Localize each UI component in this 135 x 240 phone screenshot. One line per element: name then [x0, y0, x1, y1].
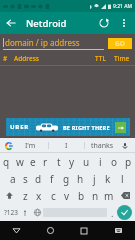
staticText: p — [125, 155, 132, 169]
staticText: c — [51, 189, 56, 203]
button[interactable]: m — [102, 187, 116, 204]
button[interactable]: l — [115, 170, 129, 187]
button[interactable]: UBER — [6, 118, 130, 136]
staticText: f — [50, 172, 54, 186]
button[interactable]: Enter — [117, 205, 132, 220]
button[interactable]: u — [79, 153, 93, 170]
button[interactable]: v — [60, 187, 74, 204]
staticText: l — [121, 172, 124, 186]
button[interactable]: q — [0, 153, 13, 170]
staticText: x — [36, 189, 42, 203]
button[interactable]: o — [107, 153, 121, 170]
button[interactable]: d — [32, 170, 45, 187]
staticText: i — [99, 155, 102, 169]
button[interactable]: Back — [0, 12, 22, 34]
staticText: q — [3, 155, 10, 169]
staticText: Time — [114, 54, 130, 63]
button[interactable]: b — [74, 187, 88, 204]
staticText: I — [65, 141, 68, 151]
staticText: TTL — [95, 54, 106, 63]
button[interactable]: h — [73, 170, 87, 187]
staticText: UBER — [10, 123, 30, 131]
staticText: Netdroid — [26, 17, 67, 30]
button[interactable]: Emoji — [19, 204, 31, 221]
button[interactable]: I — [49, 138, 84, 153]
button[interactable]: e — [26, 153, 39, 170]
staticText: v — [64, 189, 70, 203]
staticText: ?123 — [4, 208, 18, 217]
staticText: s — [23, 172, 28, 186]
button[interactable]: ?123 — [3, 204, 19, 221]
button[interactable]: thanks — [85, 138, 120, 153]
staticText: b — [78, 189, 85, 203]
staticText: u — [83, 155, 90, 169]
button[interactable]: More options — [115, 14, 133, 32]
staticText: w — [16, 155, 24, 169]
button[interactable]: Voice input — [120, 141, 130, 151]
button[interactable]: t — [52, 153, 65, 170]
button[interactable]: domain / ip address — [3, 37, 104, 50]
staticText: j — [93, 172, 96, 186]
staticText: I'm — [25, 141, 36, 151]
staticText: a — [10, 172, 16, 186]
staticText: 9:21 AM — [113, 3, 133, 10]
button[interactable]: Shift — [0, 187, 18, 204]
button[interactable]: I'm — [13, 138, 48, 153]
staticText: d — [35, 172, 42, 186]
button[interactable]: s — [19, 170, 32, 187]
button[interactable]: a — [6, 170, 19, 187]
button[interactable]: Change keyboard language — [31, 204, 43, 221]
staticText: n — [92, 189, 99, 203]
button[interactable]: y — [65, 153, 79, 170]
staticText: z — [23, 189, 28, 203]
button[interactable]: g — [59, 170, 73, 187]
button[interactable]: j — [87, 170, 101, 187]
button[interactable]: f — [45, 170, 59, 187]
button[interactable]: Recent apps — [67, 221, 101, 240]
staticText: y — [69, 155, 75, 169]
button[interactable]: r — [39, 153, 52, 170]
staticText: h — [77, 172, 84, 186]
staticText: r — [43, 155, 48, 169]
staticText: thanks — [91, 141, 114, 151]
button[interactable]: z — [18, 187, 32, 204]
button[interactable]: GO — [108, 38, 132, 49]
button[interactable]: i — [93, 153, 107, 170]
button[interactable]: c — [46, 187, 60, 204]
staticText: g — [63, 172, 70, 186]
staticText: # — [3, 54, 8, 63]
staticText: o — [111, 155, 118, 169]
staticText: Address — [14, 54, 39, 63]
staticText: BE RIGHT THERE — [63, 124, 110, 131]
button[interactable]: Home — [33, 221, 67, 240]
staticText: GO — [115, 39, 125, 48]
staticText: e — [30, 155, 36, 169]
staticText: . — [111, 207, 114, 219]
button[interactable]: Hide keyboard — [101, 221, 135, 240]
button[interactable]: w — [13, 153, 26, 170]
staticText: t — [57, 155, 61, 169]
button[interactable]: x — [32, 187, 46, 204]
button[interactable]: n — [88, 187, 102, 204]
button[interactable]: Refresh — [93, 12, 115, 34]
button[interactable]: k — [101, 170, 115, 187]
staticText: k — [105, 172, 111, 186]
button[interactable]: Google — [5, 142, 13, 150]
staticText: m — [104, 189, 114, 203]
button[interactable]: p — [121, 153, 135, 170]
button[interactable]: Backspace — [116, 187, 135, 204]
staticText: domain / ip address — [5, 37, 80, 48]
button[interactable]: . — [107, 204, 117, 221]
button[interactable]: Back — [0, 221, 33, 240]
